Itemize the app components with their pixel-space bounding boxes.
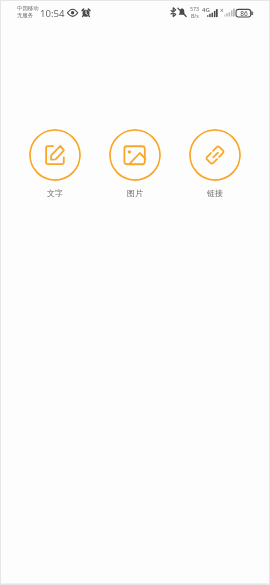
staticText: B/s <box>191 12 199 19</box>
staticText: 中国移动 <box>17 5 39 12</box>
staticText: 573 <box>190 5 199 12</box>
staticText: 86 <box>240 9 248 18</box>
staticText: × <box>220 6 224 15</box>
staticText: 10:54 <box>40 7 65 20</box>
staticText: 链接 <box>181 188 249 198</box>
staticText: 文字 <box>21 188 89 198</box>
button[interactable]: 图片 <box>101 125 169 198</box>
button[interactable]: 文字 <box>21 125 89 198</box>
staticText: 无服务 <box>17 12 34 19</box>
staticText: 图片 <box>101 188 169 198</box>
staticText: 4G <box>202 6 210 14</box>
button[interactable]: 链接 <box>181 125 249 198</box>
